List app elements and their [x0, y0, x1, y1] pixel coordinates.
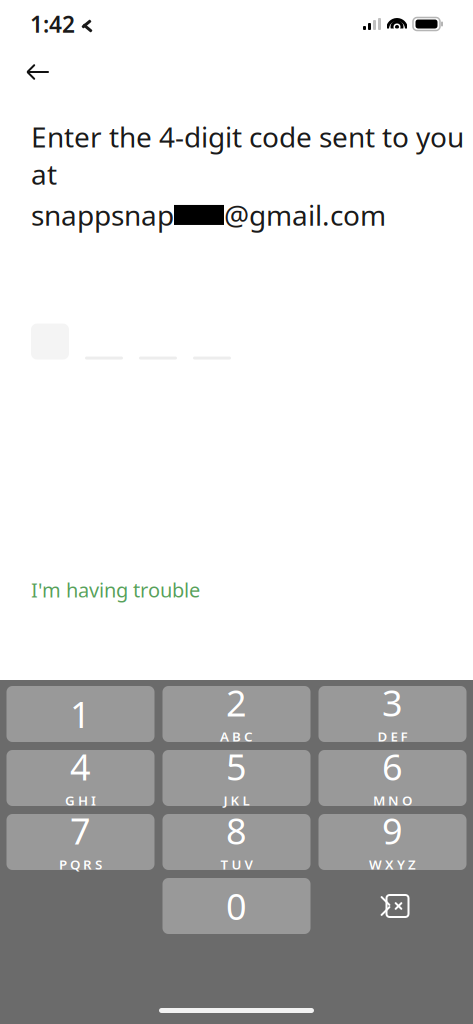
- staticText: W X Y Z: [369, 856, 416, 873]
- staticText: snappsnap: [31, 196, 174, 234]
- staticText: G H I: [65, 792, 96, 809]
- staticText: D E F: [377, 728, 407, 745]
- button[interactable]: Back: [14, 50, 62, 94]
- button[interactable]: 6: [318, 750, 466, 806]
- staticText: P Q R S: [59, 856, 102, 873]
- button[interactable]: 3: [318, 686, 466, 742]
- staticText: A B C: [220, 728, 253, 745]
- staticText: I'm having trouble: [31, 576, 200, 603]
- staticText: Enter the 4-digit code sent to you at: [31, 118, 464, 192]
- button[interactable]: 0: [162, 878, 310, 934]
- staticText: 1: [70, 690, 91, 738]
- button[interactable]: Delete: [318, 878, 466, 934]
- staticText: 2: [226, 679, 247, 726]
- staticText: 8: [226, 807, 247, 854]
- button[interactable]: 8: [162, 814, 310, 870]
- button[interactable]: 2: [162, 686, 310, 742]
- staticText: 6: [382, 743, 403, 790]
- button[interactable]: 7: [6, 814, 154, 870]
- button[interactable]: 5: [162, 750, 310, 806]
- staticText: M N O: [373, 792, 412, 809]
- staticText: 4: [70, 743, 91, 790]
- button[interactable]: I'm having trouble: [31, 568, 200, 611]
- staticText: 7: [70, 807, 91, 854]
- staticText: 5: [226, 743, 247, 790]
- staticText: 0: [226, 882, 247, 930]
- staticText: @gmail.com: [224, 196, 386, 234]
- button[interactable]: 9: [318, 814, 466, 870]
- staticText: J K L: [223, 792, 249, 809]
- staticText: T U V: [220, 856, 252, 873]
- staticText: 3: [382, 679, 403, 726]
- staticText: 1:42: [30, 9, 75, 39]
- button[interactable]: 1: [6, 686, 154, 742]
- button[interactable]: 4: [6, 750, 154, 806]
- staticText: 9: [382, 807, 403, 854]
